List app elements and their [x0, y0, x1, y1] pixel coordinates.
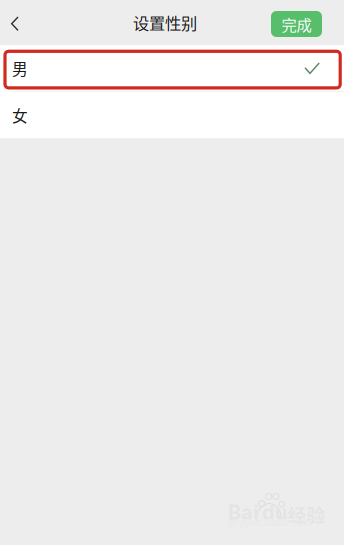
button[interactable]: 完成	[271, 11, 322, 37]
staticText: 男	[12, 57, 28, 80]
staticText: 设置性别	[133, 11, 197, 34]
staticText: 经验	[287, 500, 325, 527]
button[interactable]: 男	[0, 45, 344, 91]
button[interactable]: Back	[0, 0, 42, 45]
staticText: du	[262, 500, 287, 524]
staticText: 完成	[281, 13, 311, 35]
staticText: Bai	[228, 500, 258, 524]
staticText: 女	[12, 104, 28, 126]
button[interactable]: 女	[0, 92, 344, 138]
